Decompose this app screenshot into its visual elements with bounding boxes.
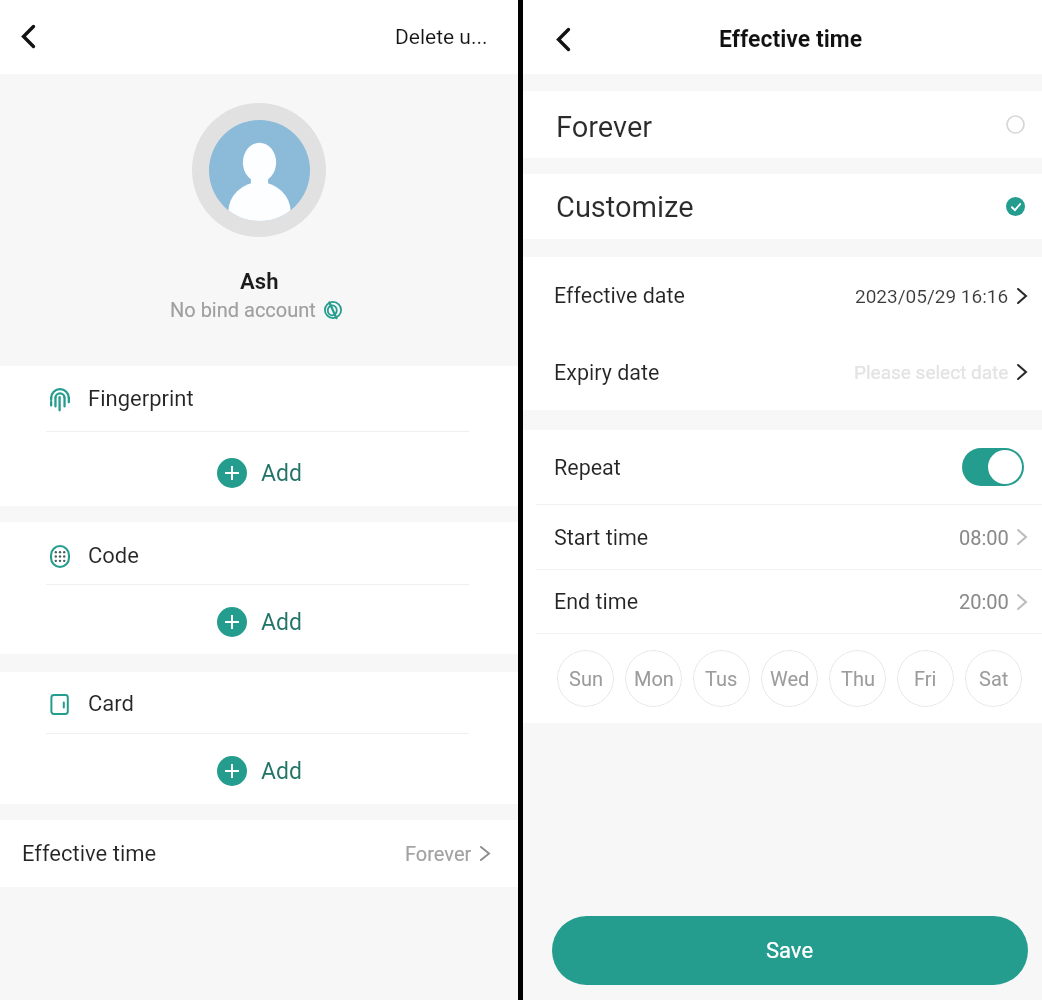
staticText: Customize <box>556 190 694 224</box>
staticText: Effective date <box>554 283 685 308</box>
staticText: Repeat <box>554 455 621 480</box>
button[interactable]: Tus <box>693 650 750 707</box>
staticText: Add <box>261 460 302 487</box>
staticText: Add <box>261 758 302 785</box>
button[interactable]: Back <box>6 14 50 58</box>
button[interactable]: Repeat <box>523 430 1042 504</box>
staticText: Forever <box>405 842 472 865</box>
button[interactable]: Thu <box>829 650 886 707</box>
button[interactable]: Sat <box>965 650 1022 707</box>
staticText: No bind account <box>170 298 316 321</box>
staticText: Effective time <box>719 26 863 53</box>
staticText: Mon <box>634 667 674 690</box>
button[interactable]: Effective time <box>0 820 518 887</box>
staticText: 20:00 <box>959 590 1009 613</box>
button[interactable]: Delete u... <box>395 25 518 50</box>
staticText: Save <box>766 938 814 964</box>
staticText: Fingerprint <box>88 386 194 412</box>
staticText: Sat <box>979 667 1009 690</box>
button[interactable]: Customize <box>523 174 1042 239</box>
staticText: End time <box>554 589 639 614</box>
staticText: Thu <box>841 667 875 690</box>
staticText: Add <box>261 609 302 636</box>
staticText: Sun <box>569 667 603 690</box>
staticText: Card <box>88 691 134 717</box>
button[interactable]: Effective date <box>523 257 1042 334</box>
staticText: Wed <box>770 667 810 690</box>
staticText: Please select date <box>854 361 1009 383</box>
button[interactable]: Add <box>217 605 302 639</box>
staticText: Code <box>88 543 139 569</box>
staticText: Forever <box>556 110 653 144</box>
staticText: Ash <box>240 269 279 295</box>
button[interactable]: Add <box>217 754 302 788</box>
staticText: 2023/05/29 16:16 <box>855 285 1009 307</box>
staticText: Fri <box>914 667 937 690</box>
staticText: Expiry date <box>554 360 660 385</box>
button[interactable]: Expiry date <box>523 334 1042 410</box>
button[interactable]: Forever <box>523 91 1042 158</box>
staticText: Start time <box>554 525 649 550</box>
button[interactable]: Sun <box>557 650 614 707</box>
button[interactable]: Fri <box>897 650 954 707</box>
button[interactable]: Show bound account <box>323 300 343 320</box>
button[interactable]: Repeat toggle <box>962 448 1024 486</box>
staticText: Tus <box>705 667 738 690</box>
button[interactable]: Save <box>552 916 1028 985</box>
button[interactable]: Back <box>541 17 585 61</box>
button[interactable]: Add <box>217 456 302 490</box>
button[interactable]: Mon <box>625 650 682 707</box>
staticText: Effective time <box>22 841 157 867</box>
staticText: 08:00 <box>959 526 1009 549</box>
button[interactable]: Wed <box>761 650 818 707</box>
button[interactable]: Start time <box>523 505 1042 569</box>
button[interactable]: End time <box>523 570 1042 633</box>
